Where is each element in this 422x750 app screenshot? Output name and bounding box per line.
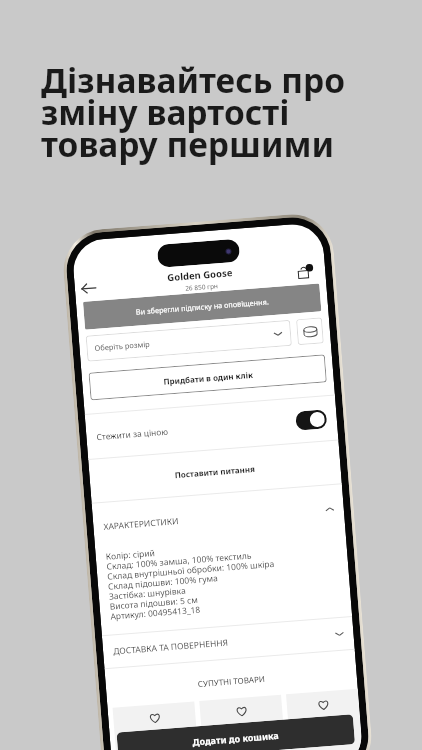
staticText: СУПУТНІ ТОВАРИ: [106, 666, 357, 696]
button[interactable]: ХАРАКТЕРИСТИКИ: [92, 484, 346, 552]
button[interactable]: Size chart: [296, 317, 324, 345]
staticText: Поставити питання: [174, 463, 256, 480]
button[interactable]: Cart: [298, 264, 314, 280]
staticText: Стежити за ціною: [96, 426, 169, 442]
button[interactable]: Поставити питання: [88, 440, 342, 503]
staticText: Колір: сірий Склад: 100% замша, 100% тек…: [105, 538, 278, 623]
staticText: Golden Goose: [167, 266, 234, 284]
staticText: Придбати в один клік: [163, 369, 253, 387]
button[interactable]: Оберіть розмір: [86, 320, 292, 362]
staticText: Дізнавайтесь про зміну вартості товару п…: [41, 57, 346, 167]
button[interactable]: [286, 689, 364, 750]
staticText: Оберіть розмір: [94, 339, 151, 353]
staticText: 26 850 грн: [185, 281, 218, 293]
staticText: ДОСТАВКА ТА ПОВЕРНЕННЯ: [113, 637, 229, 658]
button[interactable]: [199, 695, 287, 750]
button[interactable]: ДОСТАВКА ТА ПОВЕРНЕННЯ: [102, 617, 355, 668]
staticText: Ви зберегли підписку на оповіщення.: [135, 296, 270, 317]
button[interactable]: Стежити за ціною: [85, 396, 338, 459]
button[interactable]: Back: [79, 279, 98, 298]
staticText: ХАРАКТЕРИСТИКИ: [103, 515, 180, 533]
button[interactable]: Додати до кошика: [116, 714, 355, 750]
staticText: Додати до кошика: [192, 729, 280, 748]
button[interactable]: [112, 701, 200, 750]
button[interactable]: Придбати в один клік: [88, 354, 327, 400]
